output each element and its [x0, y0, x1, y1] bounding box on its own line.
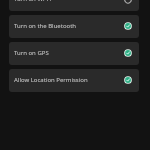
staticText: Turn on the Bluetooth: [14, 22, 77, 30]
staticText: Turn on Wi-Fi: [14, 0, 52, 3]
staticText: Allow Location Permission: [14, 76, 88, 84]
button[interactable]: Turn on Wi-Fi: [9, 0, 139, 11]
button[interactable]: Turn on GPS: [9, 42, 139, 65]
other: Completed: [124, 49, 132, 57]
button[interactable]: Allow Location Permission: [9, 69, 139, 92]
button[interactable]: Turn on the Bluetooth: [9, 15, 139, 38]
staticText: Turn on GPS: [14, 49, 49, 57]
other: Completed: [124, 22, 132, 30]
other: Completed: [124, 76, 132, 84]
other: Loading: [124, 0, 132, 4]
